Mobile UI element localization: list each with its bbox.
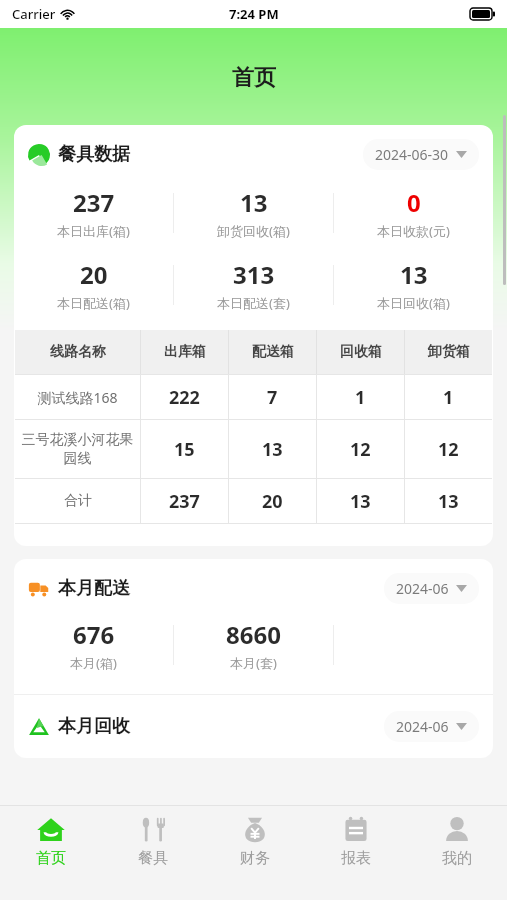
staticText: 12 [350,437,371,462]
staticText: 13 [400,258,428,291]
staticText: 2024-06 [396,579,449,598]
staticText: 餐具 [138,849,168,868]
staticText: 测试线路168 [37,388,118,407]
staticText: 本日配送(箱) [57,294,130,312]
staticText: 首页 [36,849,66,868]
staticText: 本日出库(箱) [57,222,130,240]
staticText: 我的 [442,849,472,868]
button[interactable]: 餐具 [102,806,204,900]
staticText: 报表 [341,849,371,868]
staticText: 0 [407,186,421,219]
staticText: 8660 [226,618,281,651]
staticText: 222 [169,385,200,410]
staticText: 餐具数据 [58,143,130,166]
button[interactable]: 我的 [406,806,507,900]
staticText: 2024-06 [396,717,449,736]
staticText: 卸货回收(箱) [217,222,290,240]
staticText: 20 [80,258,108,291]
button[interactable]: 财务 [204,806,305,900]
staticText: 本日回收(箱) [377,294,450,312]
staticText: 13 [350,489,371,514]
staticText: 三号花溪小河花果园线 [21,431,134,467]
staticText: 237 [169,489,200,514]
staticText: 13 [240,186,268,219]
staticText: 本月配送 [58,577,130,600]
staticText: 7:24 PM [229,5,279,23]
staticText: 13 [262,437,283,462]
staticText: 12 [438,437,459,462]
button[interactable]: 2024-06-30 [363,139,479,170]
staticText: 本日配送(套) [217,294,290,312]
staticText: 1 [443,385,454,410]
button[interactable]: 2024-06 [384,573,479,604]
staticText: Carrier [12,5,56,23]
button[interactable]: 报表 [305,806,406,900]
staticText: 本月回收 [58,715,130,738]
staticText: 出库箱 [164,343,206,361]
staticText: 2024-06-30 [375,145,449,164]
staticText: 线路名称 [50,343,106,361]
staticText: 首页 [232,64,276,92]
staticText: 回收箱 [340,343,382,361]
button[interactable]: 2024-06 [384,711,479,742]
staticText: 配送箱 [252,343,294,361]
staticText: 本月(套) [230,654,277,672]
button[interactable]: 首页 [0,806,102,900]
staticText: 15 [174,437,195,462]
staticText: 本日收款(元) [377,222,450,240]
staticText: 财务 [240,849,270,868]
staticText: 20 [262,489,283,514]
staticText: 13 [438,489,459,514]
staticText: 237 [73,186,115,219]
staticText: 合计 [64,492,92,510]
staticText: 676 [73,618,115,651]
staticText: 卸货箱 [428,343,470,361]
staticText: 本月(箱) [70,654,117,672]
staticText: 7 [267,385,278,410]
staticText: 313 [233,258,275,291]
staticText: 1 [355,385,366,410]
